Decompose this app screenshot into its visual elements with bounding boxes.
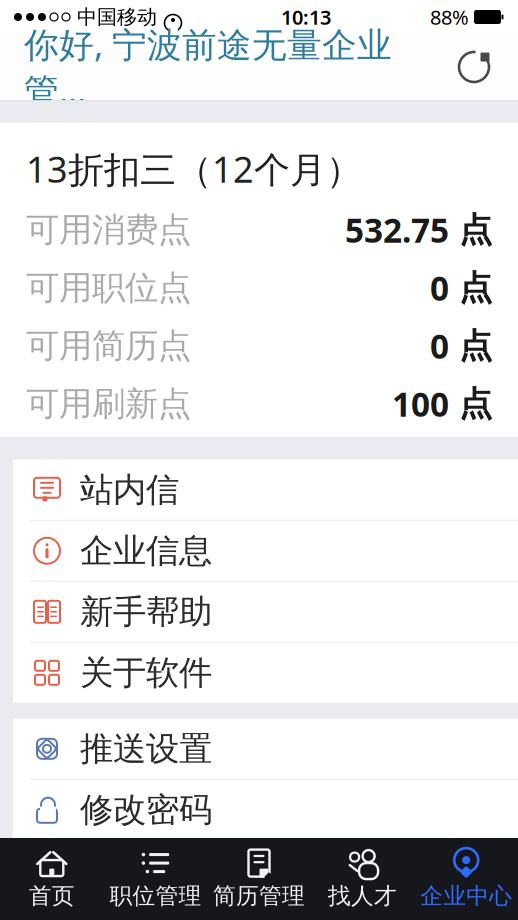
staticText: 新手帮助 xyxy=(80,591,212,632)
button[interactable]: 站内信 xyxy=(13,460,518,521)
staticText: 站内信 xyxy=(80,469,179,510)
button[interactable]: 推送设置 xyxy=(13,719,518,780)
staticText: 企业中心 xyxy=(420,882,512,910)
button[interactable]: 找人才 xyxy=(311,838,414,920)
staticText: 你好, 宁波前途无量企业管... xyxy=(24,21,392,113)
button[interactable]: 企业中心 xyxy=(414,838,518,920)
staticText: 0 xyxy=(430,324,449,368)
staticText: 10:13 xyxy=(281,4,331,30)
staticText: 可用简历点 xyxy=(26,325,191,366)
staticText: 可用职位点 xyxy=(26,267,191,308)
button[interactable]: 刷新 xyxy=(454,47,494,87)
button[interactable]: 职位管理 xyxy=(104,838,207,920)
staticText: 可用消费点 xyxy=(26,209,191,250)
staticText: 13折扣三（12个月） xyxy=(26,145,362,193)
staticText: 找人才 xyxy=(328,882,397,910)
button[interactable]: 简历管理 xyxy=(207,838,311,920)
staticText: 可用刷新点 xyxy=(26,383,191,424)
staticText: 0 xyxy=(430,266,449,310)
button[interactable]: 企业信息 xyxy=(13,521,518,582)
staticText: 修改密码 xyxy=(80,789,212,830)
button[interactable]: 新手帮助 xyxy=(13,582,518,643)
staticText: 点 xyxy=(449,209,492,250)
staticText: 企业信息 xyxy=(80,530,212,571)
staticText: 点 xyxy=(449,383,492,424)
staticText: 88% xyxy=(430,4,469,30)
staticText: 532.75 xyxy=(345,208,449,252)
staticText: 首页 xyxy=(29,882,75,910)
staticText: 关于软件 xyxy=(80,652,212,693)
staticText: 点 xyxy=(449,267,492,308)
staticText: 中国移动 xyxy=(77,5,157,29)
staticText: 推送设置 xyxy=(80,728,212,769)
staticText: 职位管理 xyxy=(109,882,201,910)
button[interactable]: 首页 xyxy=(0,838,104,920)
staticText: 点 xyxy=(449,325,492,366)
button[interactable]: 关于软件 xyxy=(13,643,518,703)
staticText: 简历管理 xyxy=(213,882,305,910)
staticText: 100 xyxy=(392,382,449,426)
button[interactable]: 修改密码 xyxy=(13,780,518,840)
